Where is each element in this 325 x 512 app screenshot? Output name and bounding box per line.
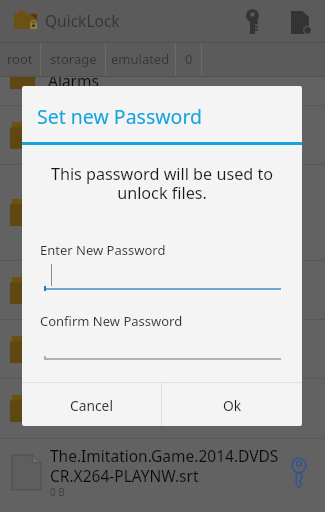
staticText: storage xyxy=(50,50,97,68)
button[interactable]: The.Imitation.Game.2014.DVDSCR.X264-PLAY… xyxy=(0,439,325,512)
staticText: Alarms xyxy=(48,77,99,91)
staticText: Enter New Password xyxy=(40,241,166,259)
button[interactable]: Encrypt file xyxy=(282,454,316,498)
button[interactable]: Alarms xyxy=(0,77,325,105)
button[interactable]: Ok xyxy=(162,383,302,426)
button[interactable] xyxy=(0,106,325,164)
staticText: The.Imitation.Game.2014.DVDSCR.X264-PLAY… xyxy=(50,445,282,487)
button[interactable] xyxy=(0,379,325,438)
staticText: QuickLock xyxy=(45,10,120,31)
button[interactable] xyxy=(0,261,325,319)
button[interactable]: 0 xyxy=(176,43,201,77)
button[interactable]: Key xyxy=(231,1,273,43)
staticText: This password will be used to unlock fil… xyxy=(40,163,284,204)
button[interactable] xyxy=(0,320,325,378)
staticText: Set new Password xyxy=(37,103,203,130)
button[interactable]: Cancel xyxy=(22,383,161,426)
staticText: root xyxy=(7,50,33,68)
staticText: Confirm New Password xyxy=(40,312,183,330)
button[interactable]: root xyxy=(0,43,40,77)
button[interactable] xyxy=(0,165,325,260)
staticText: 0 B xyxy=(50,485,65,499)
staticText: Cancel xyxy=(70,396,113,415)
staticText: 0 xyxy=(185,50,193,68)
button[interactable]: emulated xyxy=(106,43,175,77)
button[interactable]: storage xyxy=(41,43,105,77)
staticText: emulated xyxy=(111,50,170,68)
button[interactable]: New file xyxy=(279,1,321,43)
staticText: Ok xyxy=(223,396,242,415)
